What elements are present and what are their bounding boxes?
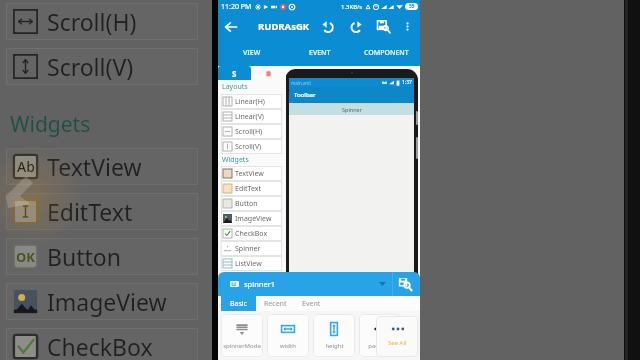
staticText: Scroll(H) [235, 127, 263, 137]
staticText: RUDRAsGK [258, 20, 310, 33]
staticText: height [325, 342, 344, 350]
staticText: Linear(H) [235, 97, 265, 107]
button[interactable]: padding [359, 314, 401, 357]
staticText: EditText [235, 184, 261, 194]
staticText: Basic [230, 299, 247, 309]
staticText: S [232, 68, 237, 79]
button[interactable]: TextView [221, 166, 282, 181]
button[interactable]: Back [218, 13, 244, 40]
button[interactable]: Event [294, 296, 329, 311]
staticText: spinnerMode [223, 342, 261, 350]
button[interactable]: height [313, 314, 355, 357]
staticText: Button [47, 241, 121, 272]
staticText: Linear(V) [235, 112, 264, 122]
button[interactable]: Scroll(V) [6, 48, 198, 85]
staticText: spinner1 [244, 279, 276, 289]
button[interactable]: OK [6, 238, 198, 275]
button[interactable]: More options [396, 13, 418, 40]
staticText: Layouts [222, 82, 248, 92]
staticText: Spinner [342, 106, 362, 113]
staticText: Ab [17, 157, 35, 176]
button[interactable]: Spinner [221, 241, 282, 256]
staticText: 1:37 [402, 79, 412, 86]
button[interactable]: EditText [6, 193, 198, 230]
staticText: CheckBox [47, 331, 153, 360]
button[interactable]: Redo [342, 13, 370, 40]
staticText: COMPONENT [364, 48, 409, 58]
staticText: See All [388, 339, 407, 347]
staticText: VIEW [243, 48, 261, 58]
button[interactable]: EditText [221, 181, 282, 196]
staticText: Toolbar [294, 91, 316, 99]
staticText: width [280, 342, 296, 350]
button[interactable]: EVENT [286, 40, 353, 66]
staticText: 11:20 PM [221, 2, 252, 12]
button[interactable]: Widget palette [218, 66, 251, 80]
button[interactable]: CheckBox [6, 328, 198, 360]
staticText: Scroll(H) [47, 6, 137, 37]
button[interactable]: Scroll(V) [221, 139, 282, 154]
button[interactable]: Delete [251, 66, 286, 80]
staticText: padding [368, 342, 392, 350]
staticText: OK [16, 248, 35, 266]
staticText: ImageView [235, 214, 272, 224]
staticText: EditText [47, 196, 133, 227]
button[interactable]: VIEW [218, 40, 286, 66]
button[interactable]: width [267, 314, 309, 357]
staticText: ListView [235, 259, 262, 269]
staticText: Widgets [222, 155, 249, 165]
button[interactable]: Select widget [372, 272, 392, 296]
button[interactable]: Undo [314, 13, 342, 40]
staticText: Button [235, 199, 258, 209]
button[interactable]: Scroll(H) [221, 124, 282, 139]
button[interactable]: See All [376, 316, 418, 357]
button[interactable]: Linear(H) [221, 94, 282, 109]
staticText: Widgets [10, 110, 91, 139]
button[interactable]: Linear(V) [221, 109, 282, 124]
button[interactable]: COMPONENT [353, 40, 420, 66]
button[interactable]: ListView [221, 256, 282, 271]
button[interactable]: Recent [256, 296, 294, 311]
button[interactable]: ImageView [6, 283, 198, 320]
staticText: CheckBox [235, 229, 268, 239]
button[interactable]: Ab [6, 148, 198, 185]
staticText: TextView [235, 169, 264, 179]
staticText: main.xml [291, 80, 311, 86]
staticText: Recent [264, 299, 287, 309]
staticText: TextView [47, 151, 142, 182]
button[interactable]: CheckBox [221, 226, 282, 241]
staticText: Event [302, 299, 321, 309]
staticText: ImageView [47, 286, 167, 317]
button[interactable]: ImageView [221, 211, 282, 226]
button[interactable]: Save [370, 13, 396, 40]
staticText: Scroll(V) [235, 142, 262, 152]
staticText: EVENT [309, 48, 331, 58]
button[interactable]: Basic [221, 296, 256, 311]
button[interactable]: Save project [393, 272, 417, 296]
button[interactable]: spinnerMode [221, 314, 263, 357]
staticText: Scroll(V) [47, 51, 134, 82]
button[interactable]: Scroll(H) [6, 3, 198, 40]
button[interactable]: Button [221, 196, 282, 211]
staticText: 1.3KB/s [341, 3, 363, 11]
staticText: 55 [409, 3, 415, 10]
staticText: Spinner [235, 244, 261, 254]
